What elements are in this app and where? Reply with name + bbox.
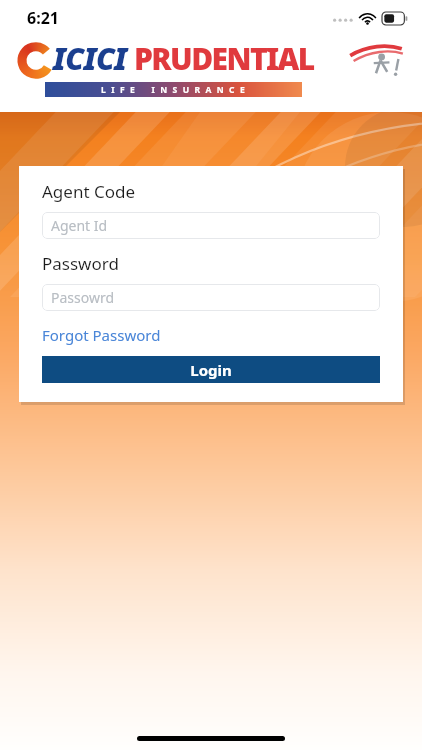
staticText: L I F E I N S U R A N C E: [101, 84, 247, 96]
button[interactable]: Login: [42, 356, 380, 383]
button[interactable]: Forgot Password: [42, 325, 161, 345]
staticText: ICICI: [53, 38, 127, 79]
staticText: PRUDENTIAL: [134, 38, 314, 79]
button[interactable]: Agent Id: [42, 212, 380, 239]
staticText: Agent Id: [51, 216, 108, 235]
staticText: Login: [190, 360, 232, 380]
button[interactable]: Passowrd: [42, 284, 380, 311]
staticText: Password: [42, 252, 119, 275]
staticText: Passowrd: [51, 288, 115, 307]
staticText: Agent Code: [42, 180, 136, 203]
staticText: 6:21: [27, 7, 59, 29]
staticText: Forgot Password: [42, 325, 161, 345]
